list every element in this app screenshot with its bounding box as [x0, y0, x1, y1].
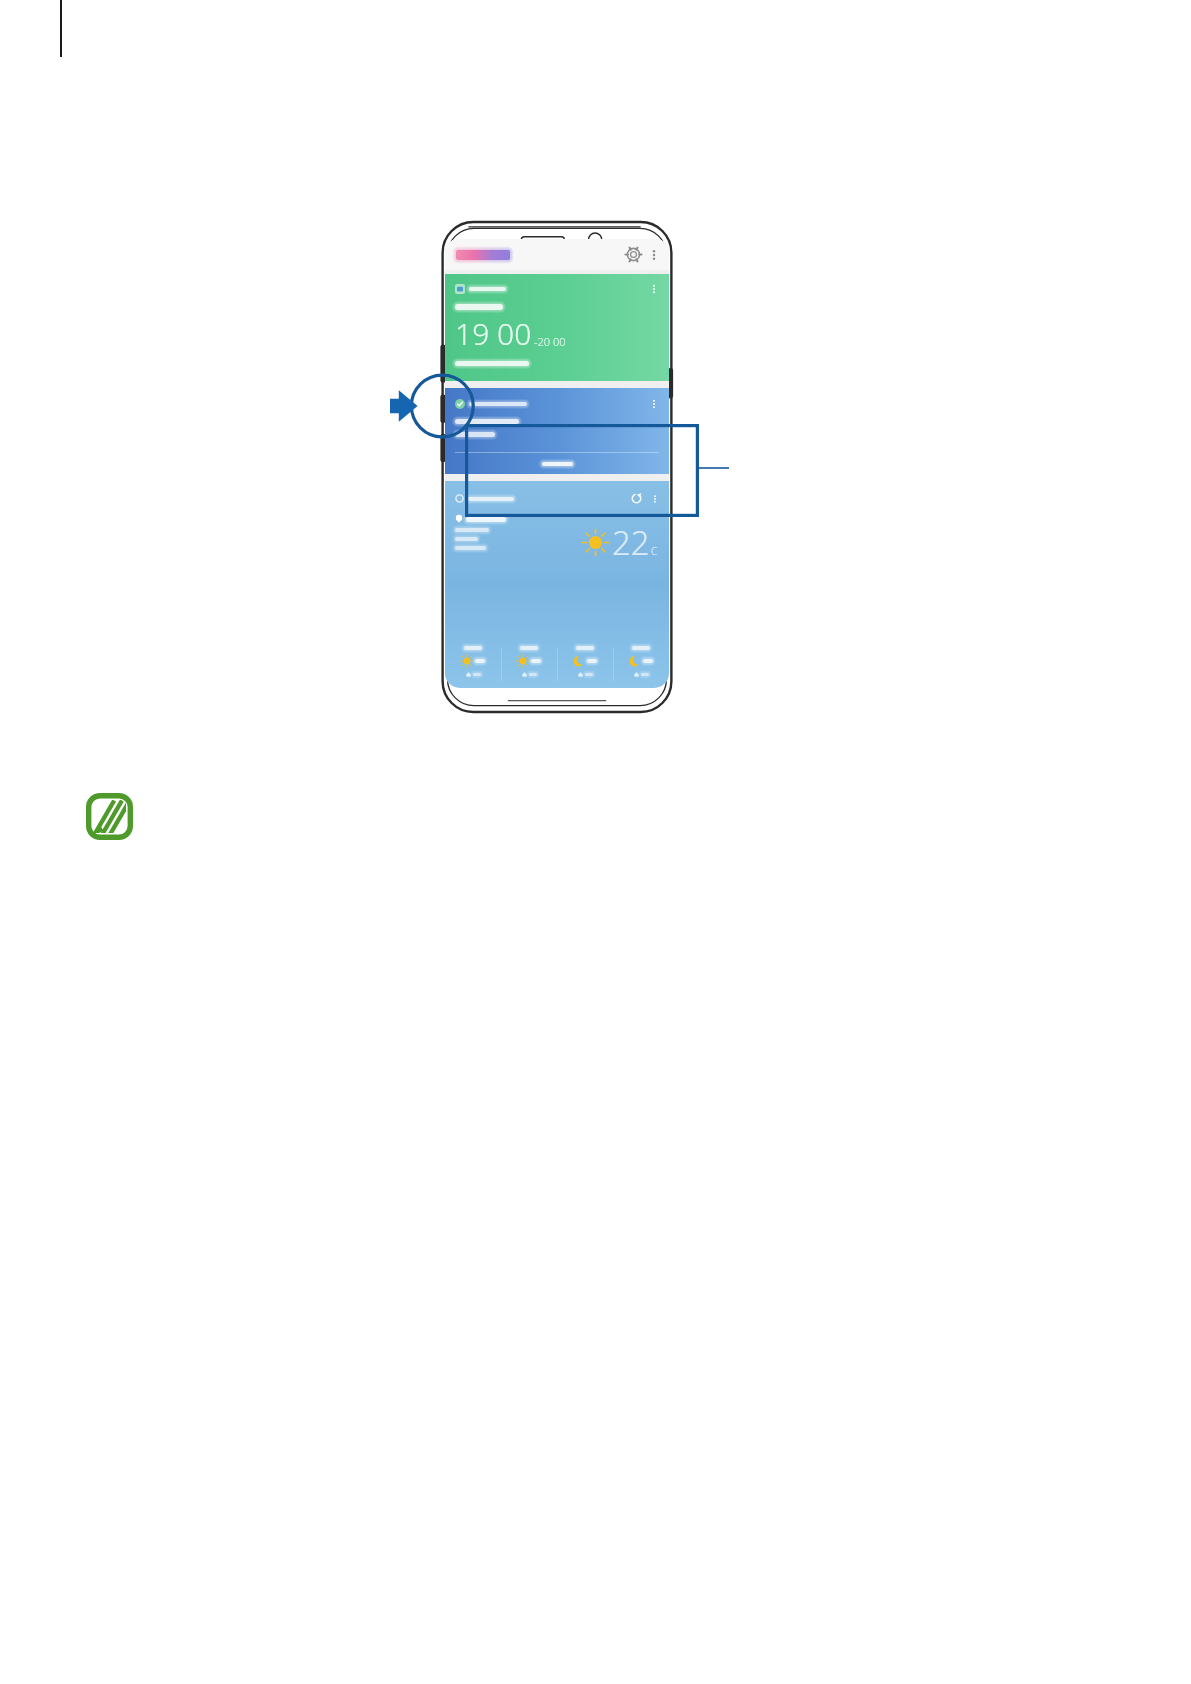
- staticText: 19 00: [455, 313, 532, 354]
- staticText: 22: [612, 520, 650, 565]
- staticText: -20 00: [534, 334, 566, 349]
- button[interactable]: Refresh: [445, 481, 669, 688]
- button[interactable]: 19 00: [445, 274, 669, 381]
- button[interactable]: Settings: [624, 245, 643, 264]
- button[interactable]: More options: [647, 282, 661, 296]
- button[interactable]: More options: [647, 397, 661, 411]
- button[interactable]: Refresh: [629, 491, 644, 506]
- button[interactable]: More options: [646, 247, 662, 263]
- other: Note: [86, 793, 133, 840]
- staticText: C: [651, 544, 658, 558]
- button[interactable]: [445, 453, 669, 474]
- button[interactable]: More options: [649, 493, 661, 505]
- button[interactable]: More options: [445, 388, 669, 474]
